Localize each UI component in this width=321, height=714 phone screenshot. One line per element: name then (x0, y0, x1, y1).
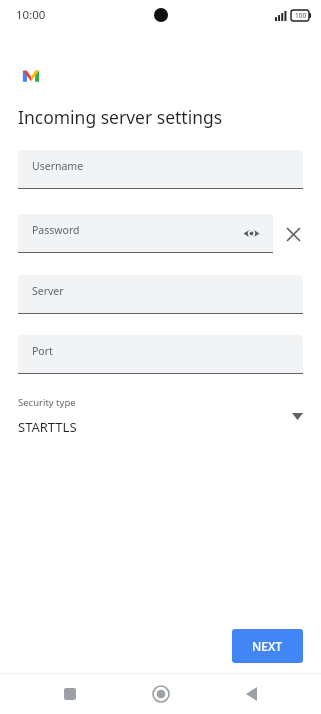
button[interactable]: Show password (239, 221, 263, 245)
button[interactable]: Security type (18, 396, 303, 436)
button[interactable]: Port (18, 335, 303, 374)
button[interactable]: Recent apps (50, 674, 90, 714)
button[interactable]: Password (18, 214, 273, 253)
button[interactable]: Back (231, 674, 271, 714)
button[interactable]: Clear password (279, 220, 307, 248)
button[interactable]: Home (141, 674, 181, 714)
staticText: STARTTLS (18, 418, 77, 436)
staticText: Username (32, 159, 84, 173)
staticText: 100 (295, 11, 307, 20)
staticText: Incoming server settings (18, 105, 223, 129)
button[interactable]: Username (18, 150, 303, 189)
staticText: Port (32, 344, 53, 358)
staticText: Password (32, 223, 80, 237)
staticText: NEXT (252, 638, 283, 654)
button[interactable]: Server (18, 275, 303, 314)
staticText: Server (32, 284, 64, 298)
staticText: Security type (18, 396, 76, 409)
staticText: 10:00 (16, 7, 46, 23)
button[interactable]: NEXT (232, 629, 303, 663)
